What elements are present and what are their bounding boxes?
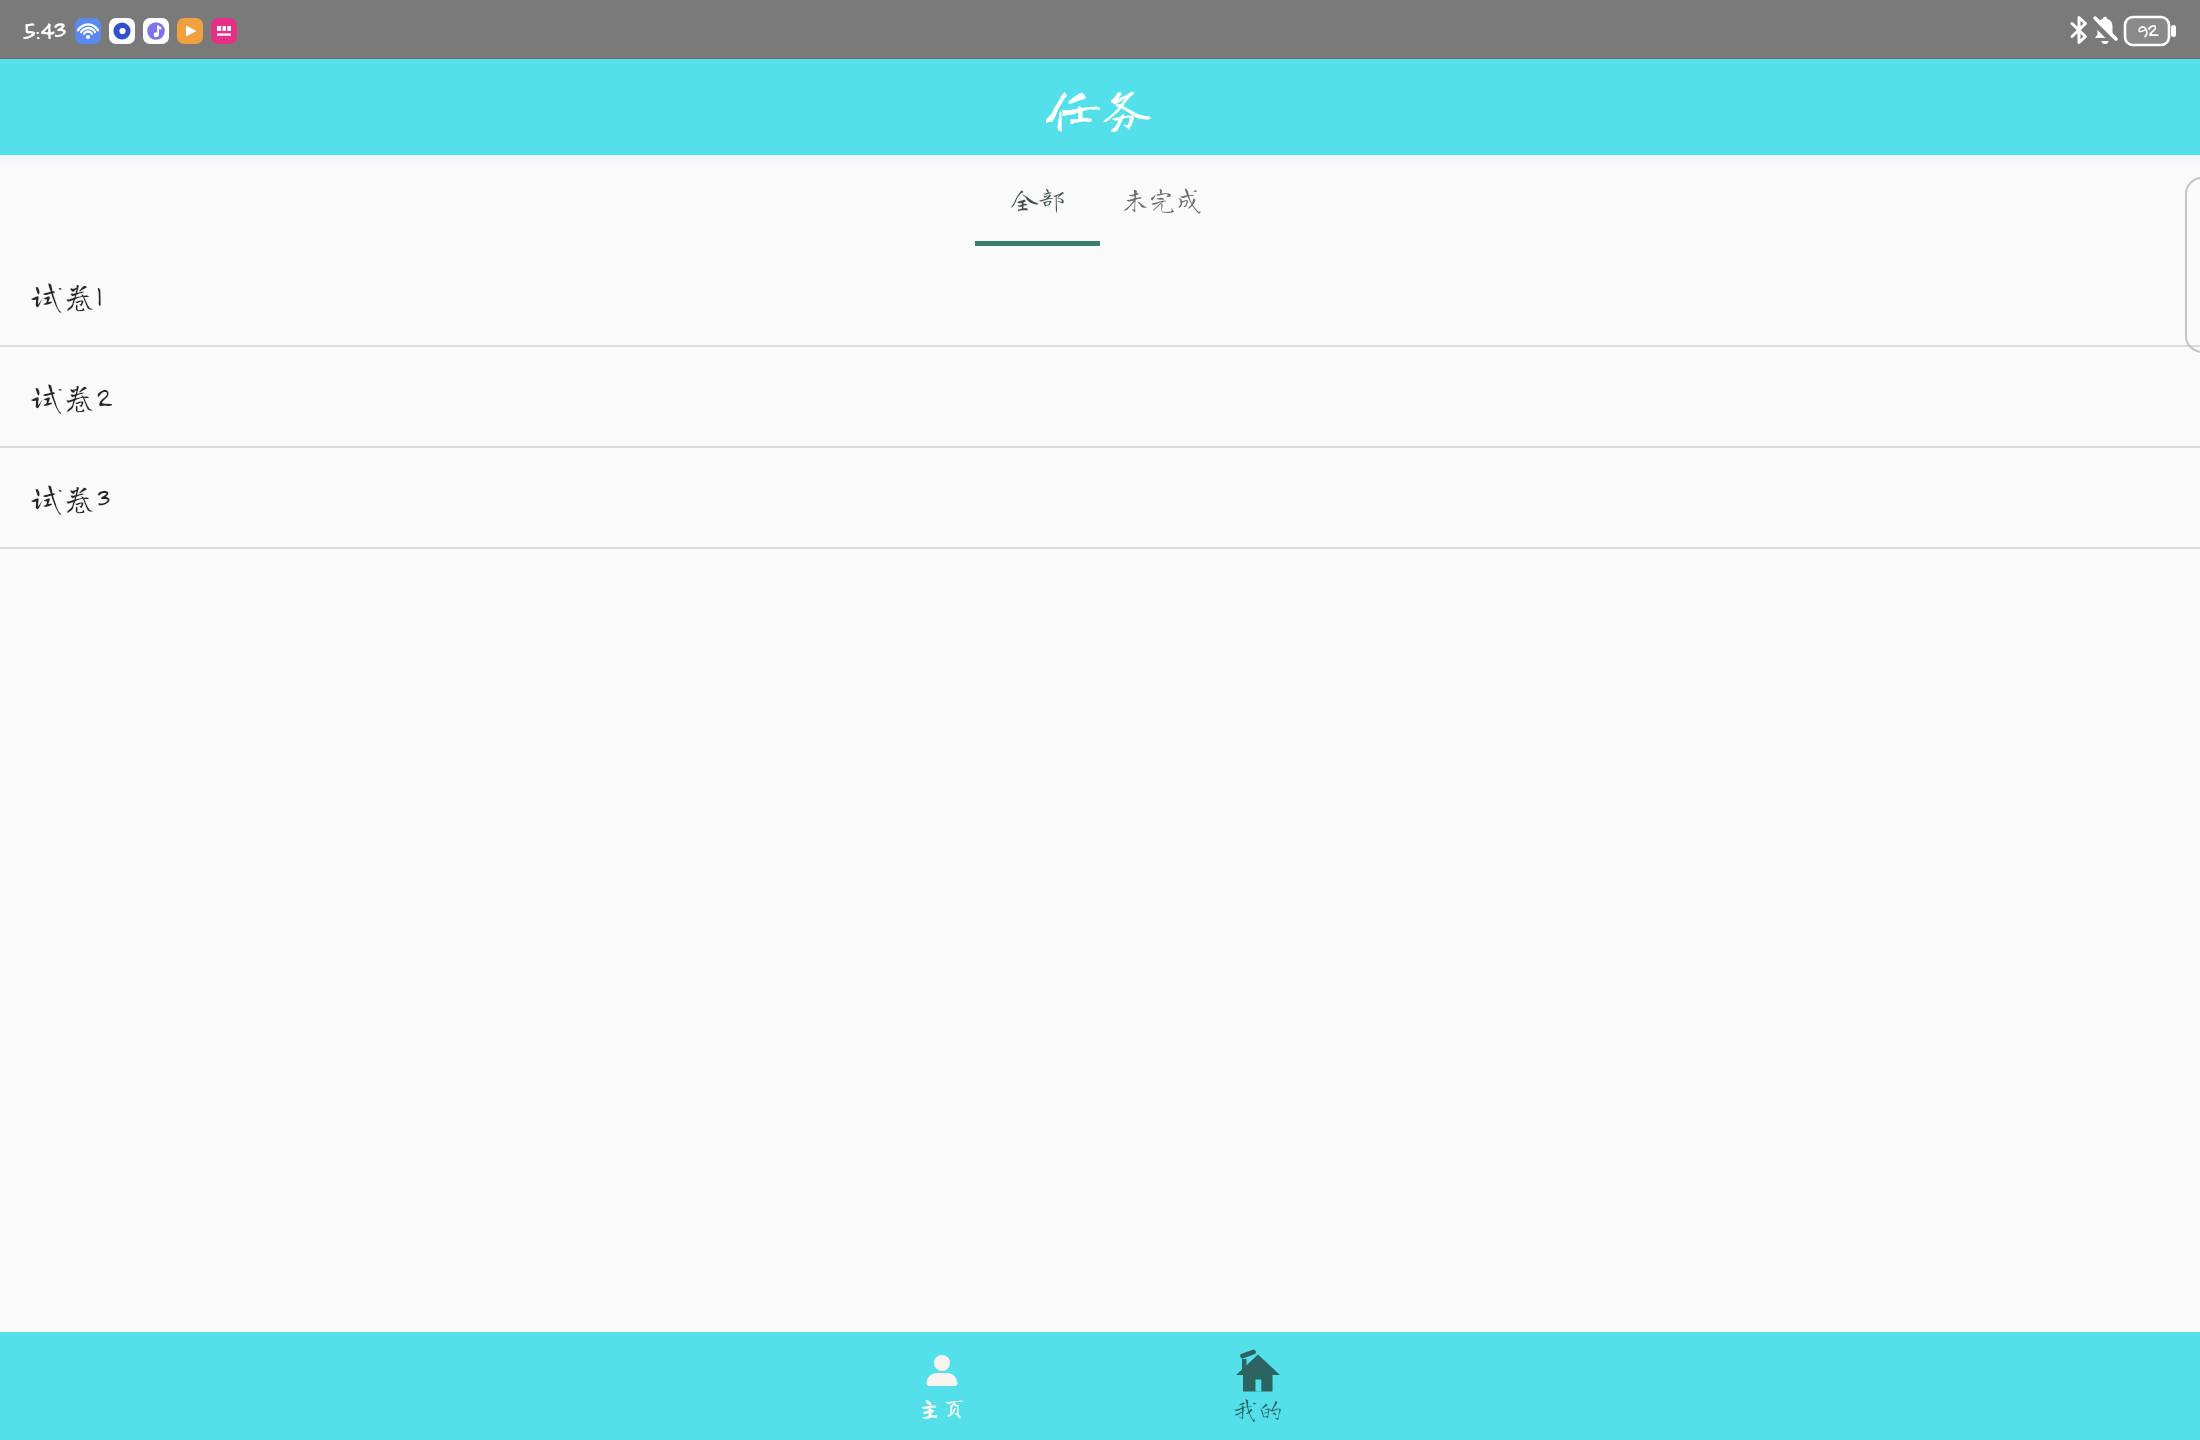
button[interactable]: 试卷3: [0, 448, 2200, 547]
staticText: 未完成: [1122, 185, 1203, 212]
staticText: 全部: [1011, 185, 1065, 212]
staticText: 试卷1: [30, 279, 102, 312]
button[interactable]: 我的: [1100, 1332, 1416, 1440]
button[interactable]: 主页: [784, 1332, 1100, 1440]
staticText: 试卷3: [30, 481, 110, 514]
button[interactable]: 试卷2: [0, 347, 2200, 446]
staticText: 我的: [1233, 1396, 1284, 1421]
staticText: 92: [2137, 18, 2158, 41]
button[interactable]: 试卷1: [0, 246, 2200, 345]
button[interactable]: 未完成: [1100, 155, 1225, 246]
staticText: 主页: [917, 1395, 968, 1420]
staticText: 任务: [1046, 80, 1154, 134]
button[interactable]: 全部: [975, 155, 1100, 246]
staticText: 5:43: [22, 14, 66, 45]
staticText: 试卷2: [30, 380, 112, 413]
